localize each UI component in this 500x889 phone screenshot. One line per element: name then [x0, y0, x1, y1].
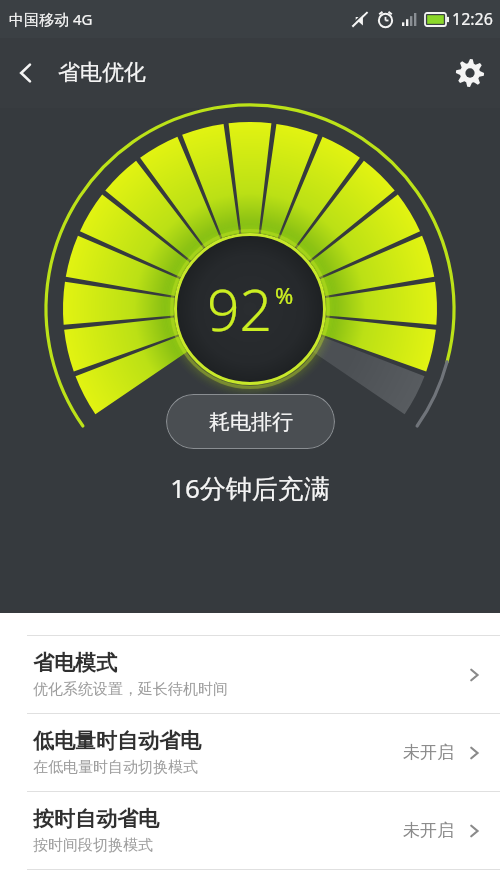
staticText: 在低电量时自动切换模式: [33, 758, 198, 777]
staticText: 12:26: [452, 8, 493, 30]
staticText: 未开启: [403, 742, 454, 763]
button[interactable]: 按时自动省电: [0, 792, 500, 869]
staticText: 省电模式: [33, 650, 117, 676]
staticText: 耗电排行: [209, 409, 293, 435]
staticText: 未开启: [403, 820, 454, 841]
button[interactable]: Settings: [440, 43, 500, 103]
button[interactable]: 低电量时自动省电: [0, 714, 500, 791]
staticText: 低电量时自动省电: [33, 728, 201, 754]
staticText: 16分钟后充满: [170, 470, 330, 506]
staticText: 按时自动省电: [33, 806, 159, 832]
staticText: 92: [207, 270, 273, 348]
staticText: 省电优化: [58, 59, 146, 87]
staticText: 按时间段切换模式: [33, 836, 153, 855]
staticText: %: [275, 280, 294, 310]
button[interactable]: Back: [0, 47, 52, 99]
button[interactable]: 耗电排行: [166, 394, 335, 449]
staticText: 优化系统设置，延长待机时间: [33, 680, 228, 699]
staticText: 中国移动 4G: [9, 9, 93, 29]
button[interactable]: 省电模式: [0, 636, 500, 713]
